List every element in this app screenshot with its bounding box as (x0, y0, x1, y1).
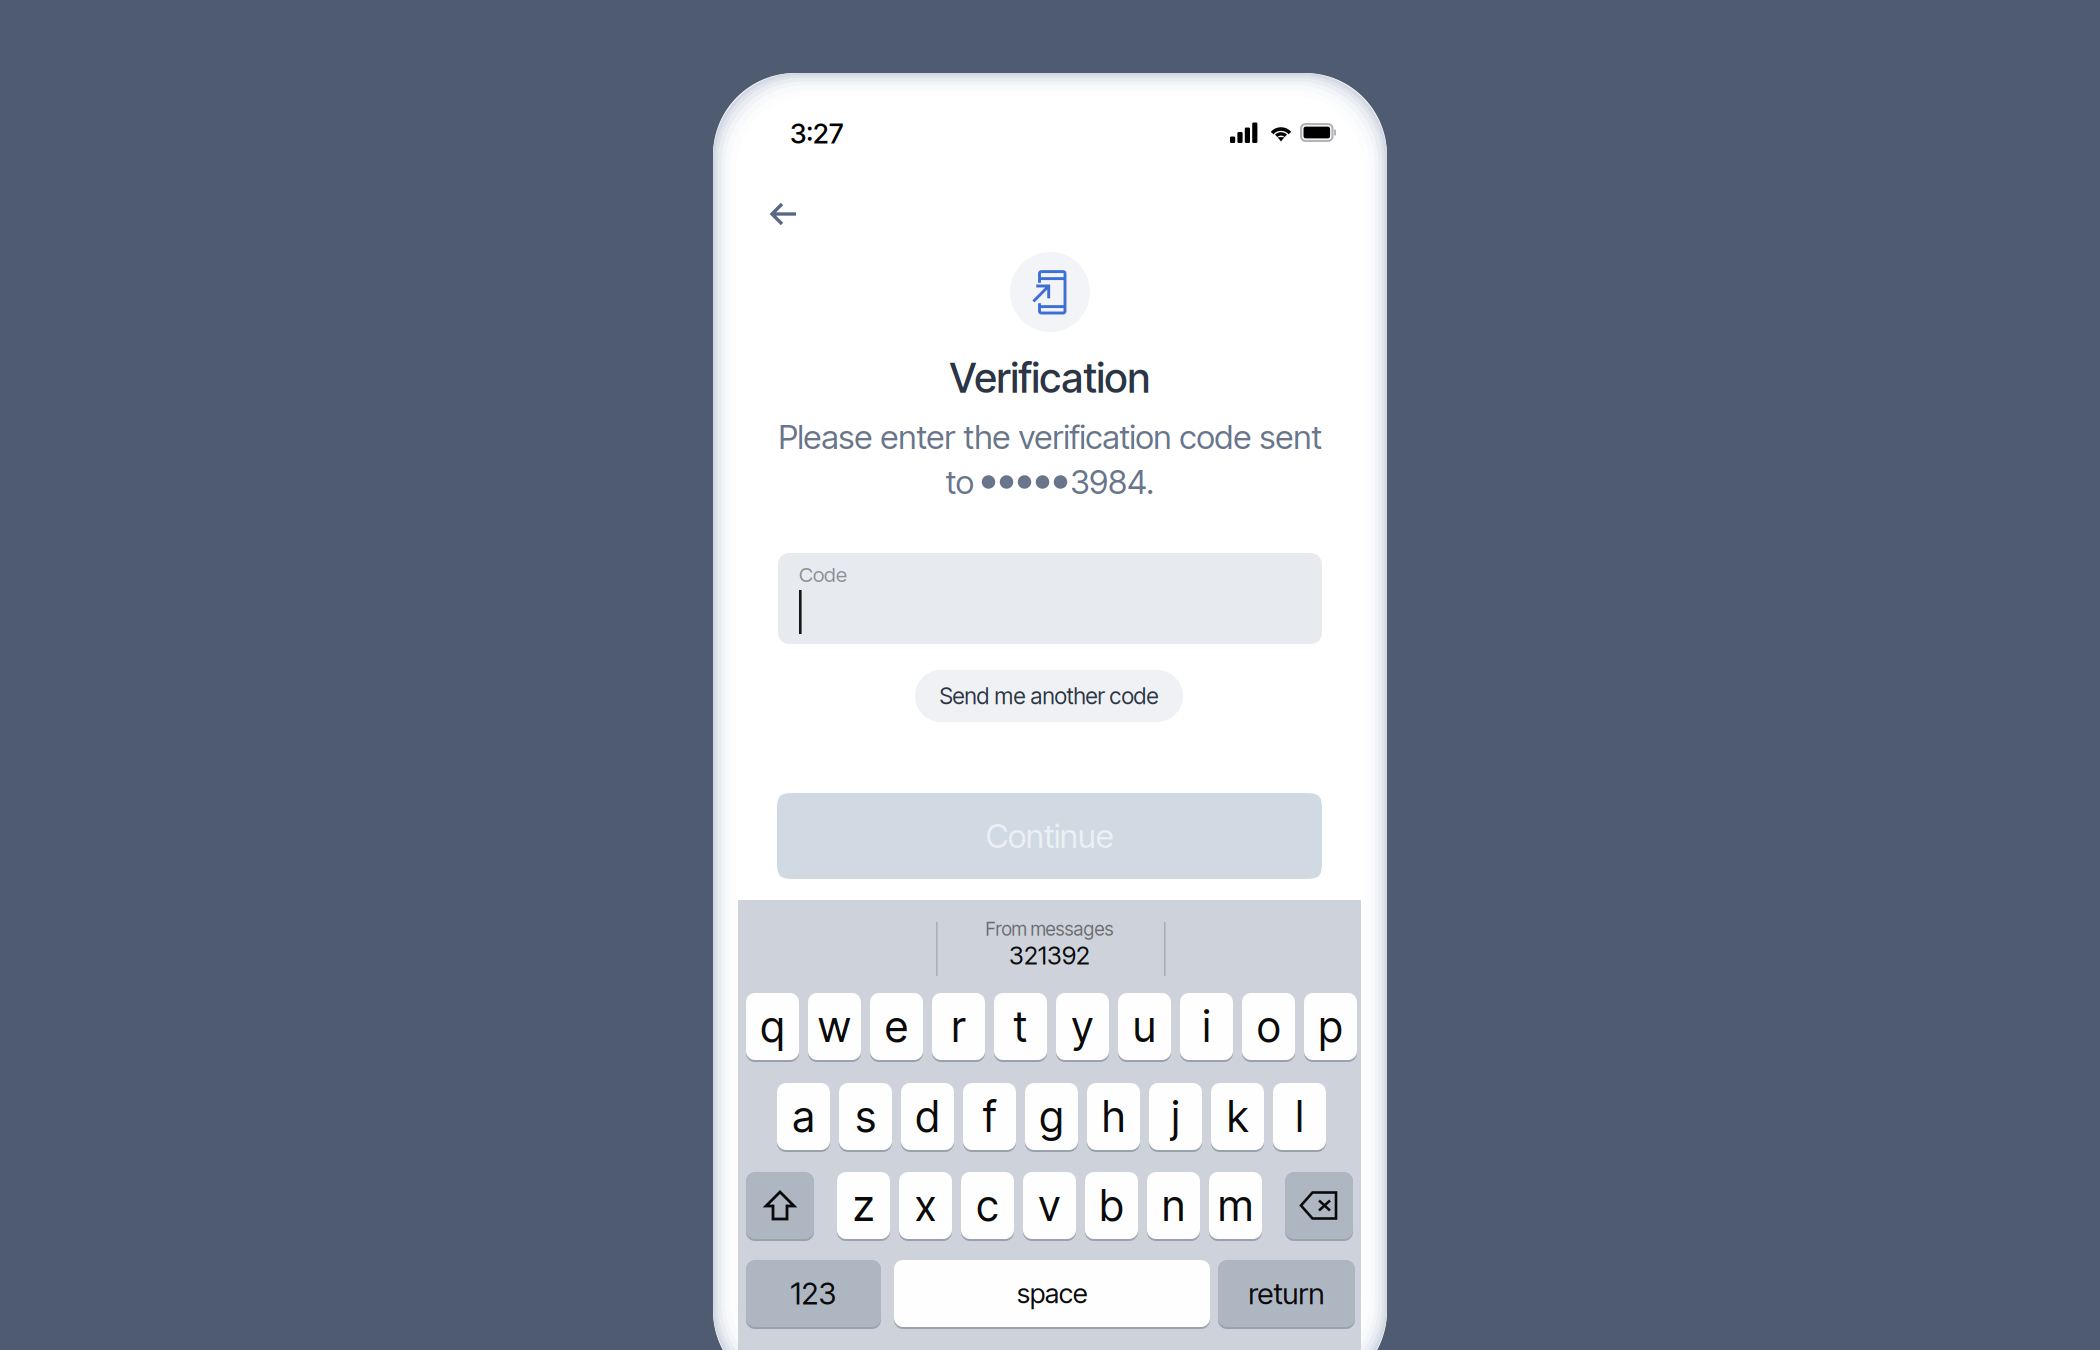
staticText: j (1171, 1091, 1179, 1142)
staticText: return (1248, 1276, 1324, 1311)
button[interactable]: s (839, 1083, 892, 1150)
button[interactable]: j (1149, 1083, 1202, 1150)
staticText: 3:27 (790, 117, 843, 150)
staticText: w (818, 1001, 851, 1052)
button[interactable]: u (1118, 993, 1171, 1060)
staticText: d (915, 1091, 939, 1142)
staticText: 3984. (1070, 462, 1154, 502)
staticText: a (792, 1091, 814, 1142)
staticText: Continue (986, 816, 1113, 856)
button[interactable]: h (1087, 1083, 1140, 1150)
staticText: c (976, 1180, 998, 1231)
staticText: l (1295, 1091, 1303, 1142)
staticText: to (946, 462, 982, 502)
staticText: t (1013, 1001, 1027, 1052)
staticText: n (1162, 1180, 1185, 1231)
staticText: o (1257, 1001, 1280, 1052)
staticText: k (1227, 1091, 1248, 1142)
staticText: Send me another code (939, 682, 1158, 710)
button[interactable]: q (746, 993, 799, 1060)
button[interactable]: e (870, 993, 923, 1060)
staticText: i (1202, 1001, 1210, 1052)
button[interactable]: o (1242, 993, 1295, 1060)
staticText: u (1133, 1001, 1156, 1052)
staticText: q (760, 1001, 784, 1052)
staticText: h (1102, 1091, 1125, 1142)
button[interactable]: k (1211, 1083, 1264, 1150)
staticText: y (1071, 1001, 1093, 1052)
staticText: e (885, 1001, 908, 1052)
staticText: g (1039, 1091, 1063, 1142)
button[interactable]: Continue (777, 793, 1322, 879)
button[interactable]: return (1218, 1260, 1355, 1327)
staticText: Please enter the verification code sent (778, 417, 1321, 457)
button[interactable]: t (994, 993, 1047, 1060)
button[interactable]: w (808, 993, 861, 1060)
staticText: p (1318, 1001, 1342, 1052)
staticText: x (915, 1180, 936, 1231)
staticText: z (853, 1180, 874, 1231)
button[interactable]: Shift (746, 1172, 814, 1239)
staticText: v (1038, 1180, 1060, 1231)
button[interactable]: 123 (746, 1260, 881, 1327)
staticText: 123 (790, 1275, 836, 1312)
staticText: f (983, 1091, 996, 1142)
button[interactable]: Code (778, 553, 1322, 644)
button[interactable]: v (1023, 1172, 1076, 1239)
staticText: Code (799, 562, 847, 587)
staticText: s (855, 1091, 875, 1142)
staticText: 321392 (1009, 940, 1090, 970)
button[interactable]: c (961, 1172, 1014, 1239)
button[interactable]: l (1273, 1083, 1326, 1150)
button[interactable]: y (1056, 993, 1109, 1060)
button[interactable]: n (1147, 1172, 1200, 1239)
button[interactable]: Backspace (1285, 1172, 1353, 1239)
button[interactable]: m (1209, 1172, 1262, 1239)
button[interactable]: Back (755, 192, 803, 236)
button[interactable]: b (1085, 1172, 1138, 1239)
button[interactable]: r (932, 993, 985, 1060)
button[interactable]: p (1304, 993, 1357, 1060)
staticText: r (951, 1001, 965, 1052)
button[interactable]: g (1025, 1083, 1078, 1150)
staticText: b (1099, 1180, 1123, 1231)
button[interactable]: Send me another code (915, 670, 1183, 722)
button[interactable]: x (899, 1172, 952, 1239)
button[interactable]: i (1180, 993, 1233, 1060)
button[interactable]: z (837, 1172, 890, 1239)
button[interactable]: d (901, 1083, 954, 1150)
button[interactable]: f (963, 1083, 1016, 1150)
button[interactable]: a (777, 1083, 830, 1150)
staticText: m (1218, 1180, 1253, 1231)
staticText: From messages (985, 918, 1113, 940)
button[interactable]: space (894, 1260, 1210, 1327)
staticText: Verification (949, 353, 1150, 403)
staticText: space (1017, 1277, 1087, 1310)
